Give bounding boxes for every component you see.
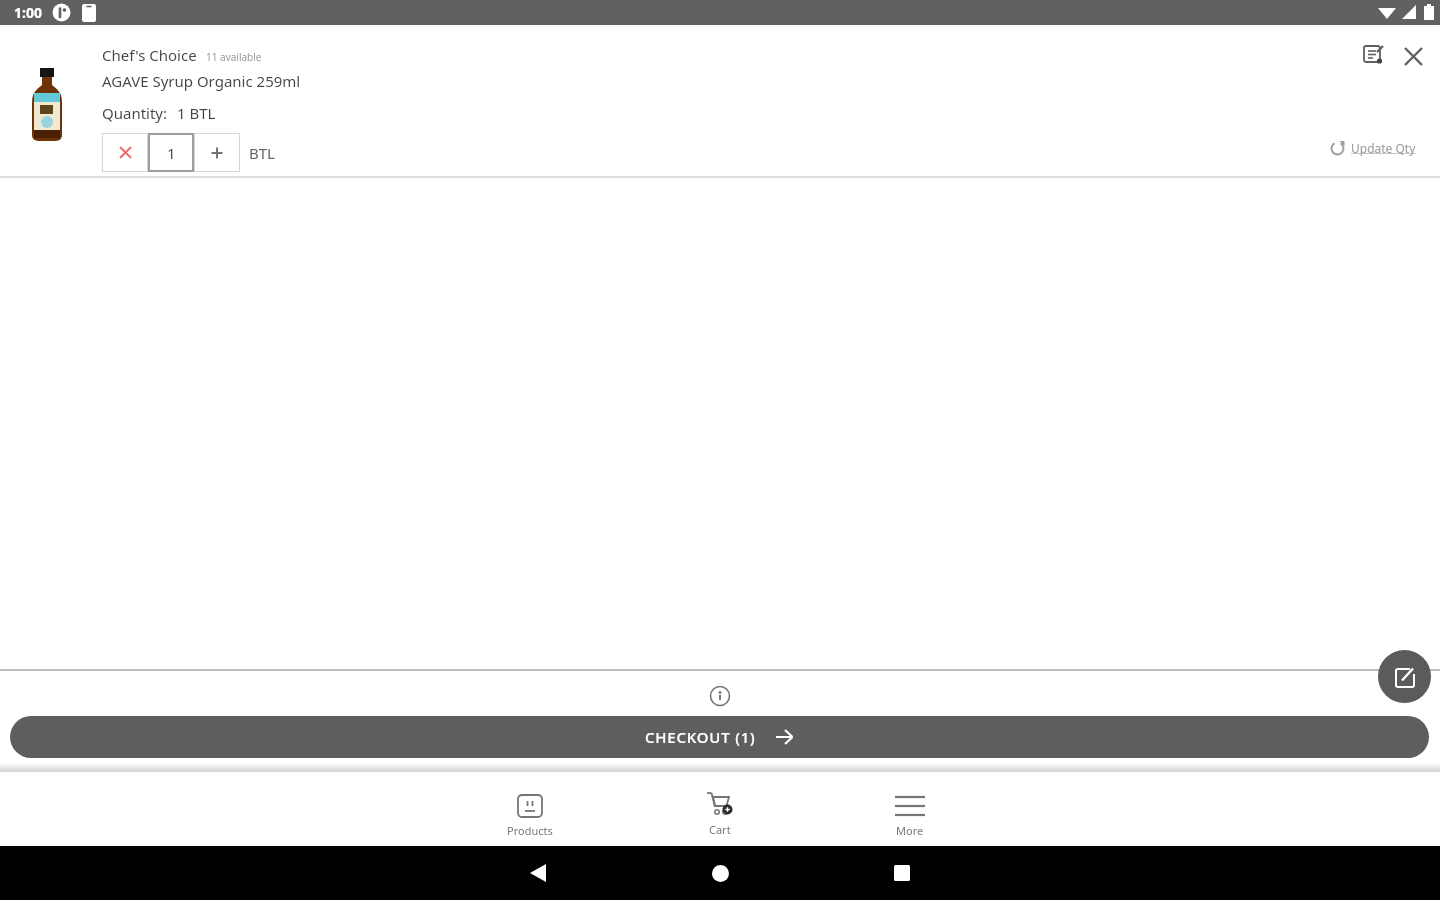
button[interactable] bbox=[883, 854, 921, 892]
staticText: Update Qty bbox=[1351, 140, 1416, 156]
button[interactable] bbox=[701, 854, 739, 892]
button[interactable] bbox=[1398, 41, 1428, 71]
button[interactable]: Update Qty bbox=[1330, 140, 1416, 156]
button[interactable]: 1 bbox=[148, 133, 194, 172]
staticText: More bbox=[896, 823, 924, 838]
staticText: AGAVE Syrup Organic 259ml bbox=[102, 71, 301, 91]
staticText: Cart bbox=[709, 822, 731, 837]
button[interactable] bbox=[1358, 38, 1390, 70]
button[interactable] bbox=[102, 133, 148, 172]
staticText: Chef's Choice bbox=[102, 45, 197, 65]
staticText: 1 bbox=[167, 143, 176, 163]
button[interactable]: Cart bbox=[680, 791, 760, 851]
button[interactable]: CHECKOUT (1) bbox=[10, 716, 1429, 758]
button[interactable]: More bbox=[870, 793, 950, 853]
button[interactable] bbox=[194, 133, 240, 172]
staticText: BTL bbox=[249, 143, 275, 163]
staticText: Products bbox=[507, 823, 553, 838]
button[interactable] bbox=[519, 854, 557, 892]
button[interactable]: Products bbox=[490, 793, 570, 853]
staticText: 1 BTL bbox=[177, 103, 216, 123]
staticText: 11 available bbox=[206, 50, 262, 64]
button[interactable] bbox=[1378, 650, 1431, 703]
staticText: CHECKOUT (1) bbox=[645, 727, 756, 747]
staticText: Quantity: bbox=[102, 103, 168, 123]
staticText: 1:00 bbox=[14, 3, 42, 22]
